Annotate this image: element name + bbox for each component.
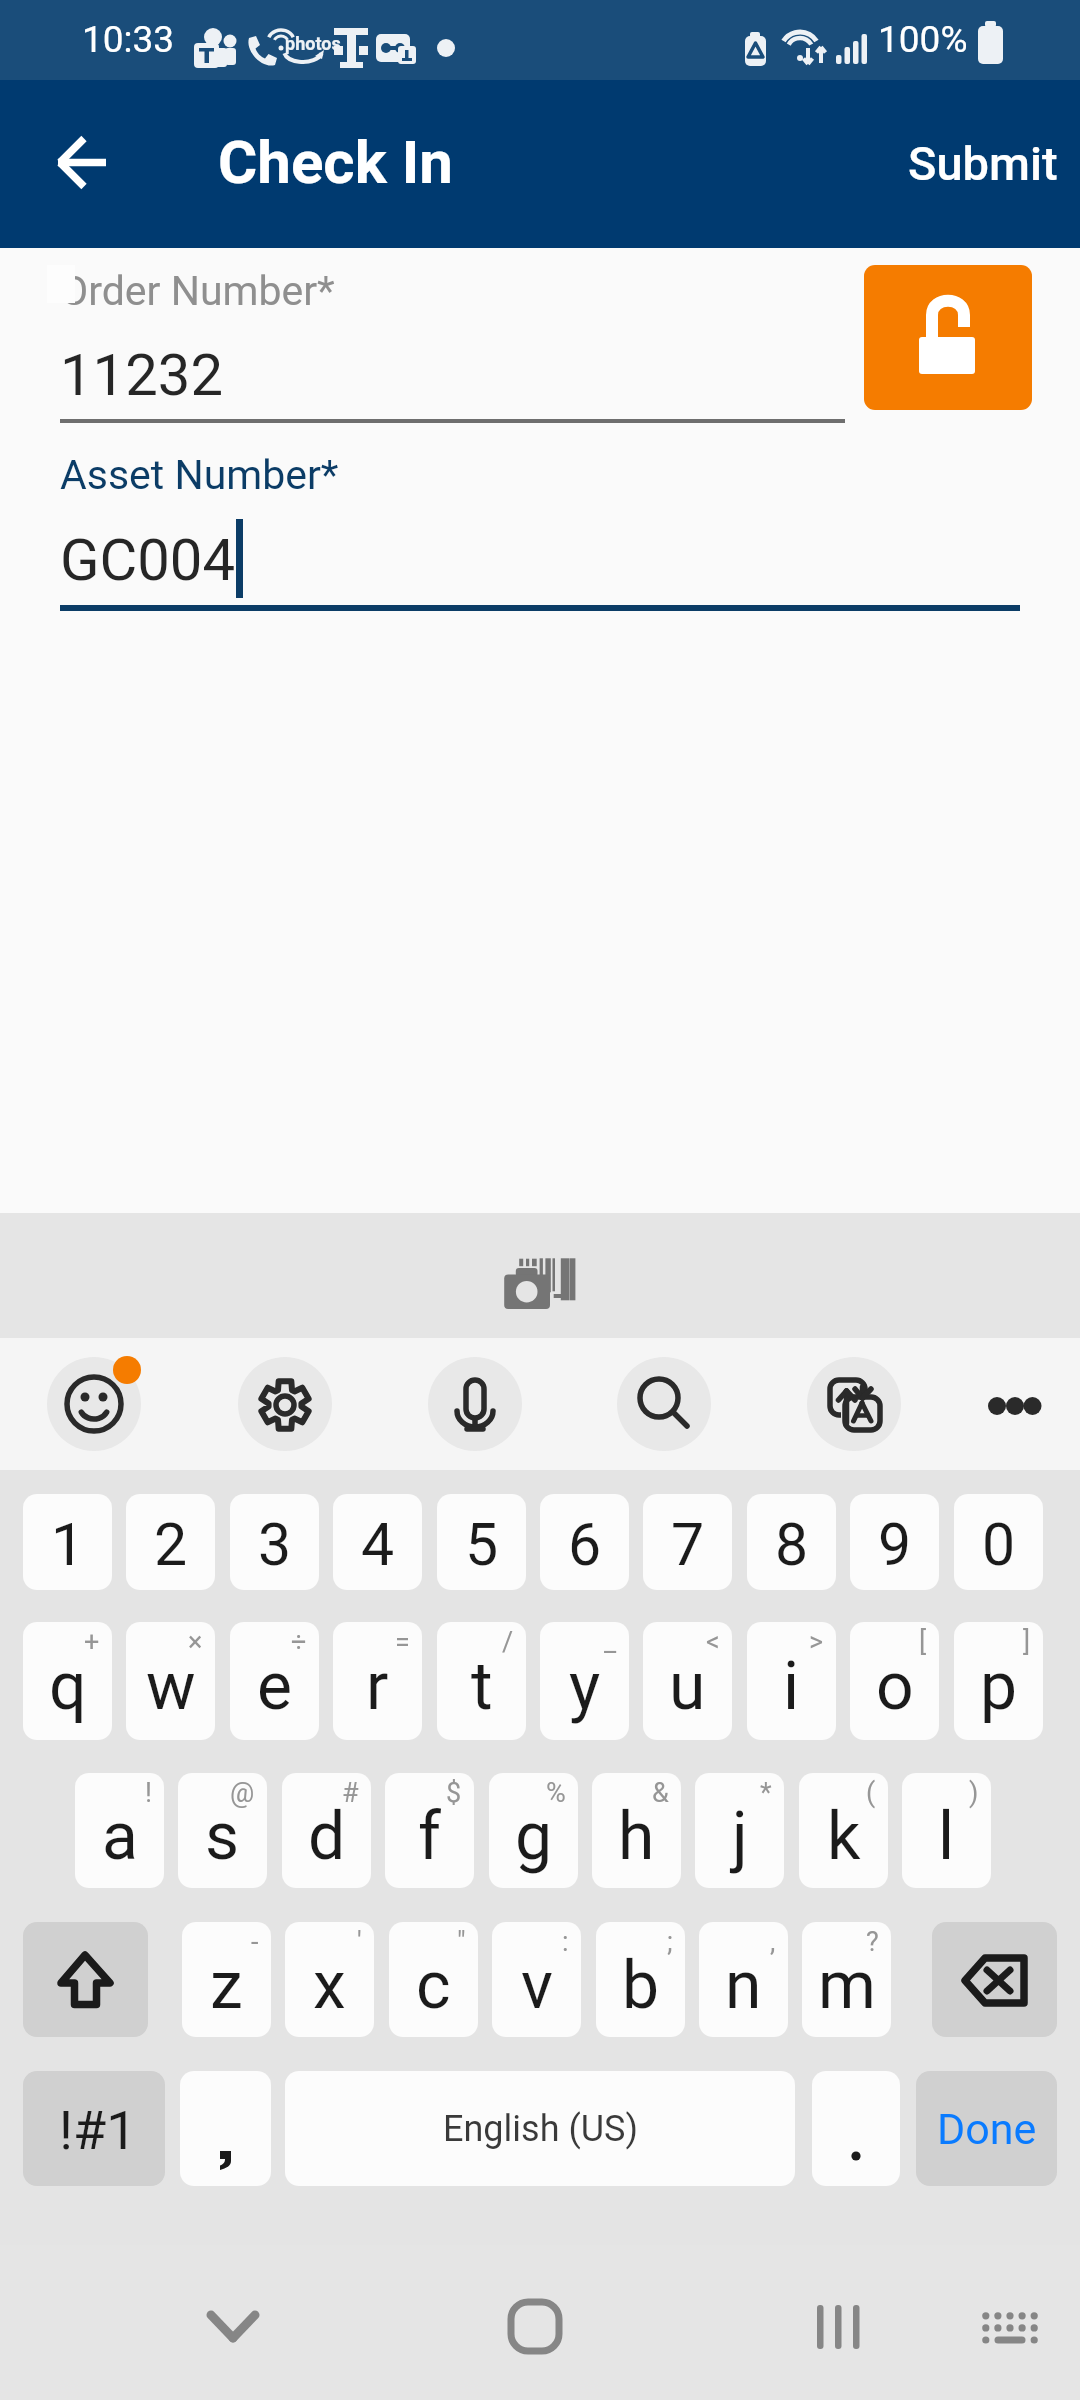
staticText: h — [618, 1798, 655, 1875]
staticText: < — [706, 1626, 720, 1658]
staticText: 9 — [878, 1510, 912, 1579]
staticText: r — [366, 1648, 389, 1725]
staticText: s — [205, 1798, 240, 1875]
button[interactable]: ÷ — [230, 1622, 319, 1740]
staticText: _ — [604, 1626, 617, 1658]
staticText: ? — [866, 1926, 879, 1958]
button[interactable]: English (US) — [285, 2071, 795, 2186]
staticText: @ — [230, 1777, 255, 1809]
button[interactable]: ? — [802, 1922, 891, 2037]
staticText: : — [562, 1926, 569, 1958]
button[interactable]: = — [333, 1622, 422, 1740]
button[interactable]: Submit — [884, 126, 1080, 201]
button[interactable]: > — [747, 1622, 836, 1740]
staticText: Check In — [218, 127, 453, 197]
staticText: 2 — [154, 1510, 188, 1579]
button[interactable]: 8 — [747, 1494, 836, 1590]
button[interactable]: 1 — [23, 1494, 112, 1590]
button[interactable]: Search — [617, 1357, 712, 1452]
button[interactable]: × — [126, 1622, 215, 1740]
staticText: % — [546, 1777, 566, 1809]
button[interactable]: Voice input — [428, 1357, 523, 1452]
button[interactable]: , — [699, 1922, 788, 2037]
button[interactable]: Switch keyboard — [960, 2245, 1060, 2385]
button[interactable]: Hide keyboard — [183, 2245, 283, 2385]
staticText: GC004 — [60, 526, 236, 594]
button[interactable]: _ — [540, 1622, 629, 1740]
button[interactable]: Comma — [180, 2071, 271, 2186]
button[interactable]: 6 — [540, 1494, 629, 1590]
button[interactable]: ; — [596, 1922, 685, 2037]
staticText: 10:33 — [82, 18, 175, 61]
staticText: Done — [937, 2104, 1037, 2154]
button[interactable]: < — [643, 1622, 732, 1740]
button[interactable]: Home — [485, 2245, 585, 2385]
button[interactable]: ) — [902, 1773, 991, 1888]
staticText: o — [876, 1648, 914, 1725]
staticText: $ — [446, 1777, 462, 1809]
button[interactable]: Recents — [788, 2245, 888, 2385]
button[interactable]: Unlock — [864, 265, 1032, 410]
staticText: ) — [969, 1777, 979, 1809]
button[interactable]: !#1 — [23, 2071, 165, 2186]
button[interactable]: & — [592, 1773, 681, 1888]
button[interactable]: Translate — [807, 1357, 902, 1452]
staticText: + — [84, 1626, 100, 1658]
staticText: = — [395, 1626, 410, 1658]
staticText: - — [251, 1926, 259, 1958]
button[interactable]: 2 — [126, 1494, 215, 1590]
staticText: z — [210, 1947, 243, 2024]
button[interactable]: 3 — [230, 1494, 319, 1590]
button[interactable]: More options — [968, 1357, 1063, 1452]
button[interactable]: " — [389, 1922, 478, 2037]
button[interactable]: Scan barcode — [498, 1255, 578, 1313]
button[interactable]: 5 — [437, 1494, 526, 1590]
button[interactable]: Shift — [23, 1922, 148, 2037]
button[interactable]: + — [23, 1622, 112, 1740]
staticText: [ — [919, 1626, 927, 1658]
staticText: ! — [145, 1777, 152, 1809]
staticText: , — [770, 1926, 776, 1958]
button[interactable]: % — [489, 1773, 578, 1888]
button[interactable]: 7 — [643, 1494, 732, 1590]
staticText: > — [809, 1626, 824, 1658]
button[interactable]: @ — [178, 1773, 267, 1888]
staticText: " — [457, 1926, 466, 1958]
button[interactable]: - — [182, 1922, 271, 2037]
button[interactable]: Emoji — [47, 1357, 142, 1452]
button[interactable]: ] — [954, 1622, 1043, 1740]
staticText: Submit — [908, 136, 1058, 191]
button[interactable]: Back — [25, 110, 135, 220]
button[interactable]: 4 — [333, 1494, 422, 1590]
button[interactable]: Done — [916, 2071, 1057, 2186]
staticText: ' — [357, 1926, 362, 1958]
button[interactable]: [ — [850, 1622, 939, 1740]
button[interactable]: : — [492, 1922, 581, 2037]
staticText: 7 — [671, 1510, 705, 1579]
button[interactable]: * — [695, 1773, 784, 1888]
staticText: b — [622, 1947, 660, 2024]
button[interactable]: ' — [285, 1922, 374, 2037]
button[interactable]: Period — [812, 2071, 900, 2186]
staticText: p — [980, 1648, 1018, 1725]
staticText: 100% — [878, 18, 968, 61]
button[interactable]: # — [282, 1773, 371, 1888]
staticText: g — [515, 1798, 553, 1875]
button[interactable]: ( — [799, 1773, 888, 1888]
button[interactable]: 9 — [850, 1494, 939, 1590]
staticText: / — [502, 1626, 514, 1658]
staticText: × — [188, 1626, 203, 1658]
button[interactable]: 0 — [954, 1494, 1043, 1590]
button[interactable]: Backspace — [932, 1922, 1057, 2037]
button[interactable]: ! — [75, 1773, 164, 1888]
button[interactable]: $ — [385, 1773, 474, 1888]
staticText: 0 — [982, 1510, 1016, 1579]
button[interactable]: / — [437, 1622, 526, 1740]
button[interactable]: Keyboard settings — [238, 1357, 333, 1452]
staticText: 5 — [465, 1510, 499, 1579]
staticText: ; — [667, 1926, 673, 1958]
staticText: j — [732, 1798, 748, 1875]
staticText: ( — [866, 1777, 876, 1809]
staticText: 4 — [361, 1510, 395, 1579]
staticText: ÷ — [291, 1626, 307, 1658]
